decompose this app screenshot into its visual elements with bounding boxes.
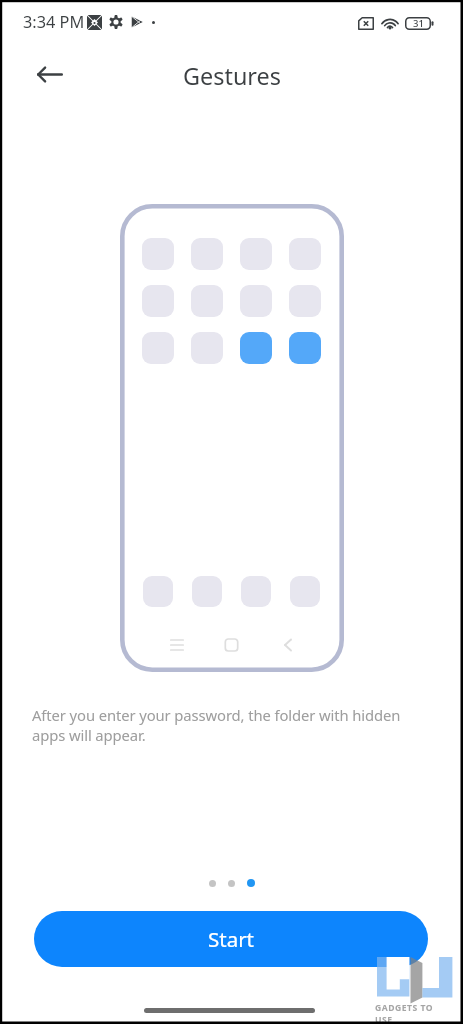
staticText: 31 <box>413 17 424 30</box>
staticText: 3:34 PM <box>23 11 85 33</box>
staticText: GADGETS TO USE <box>375 1002 451 1024</box>
staticText: After you enter your password, the folde… <box>32 705 432 746</box>
button[interactable]: Start <box>34 911 428 967</box>
staticText: Start <box>208 925 255 953</box>
button[interactable]: Back <box>32 56 68 92</box>
staticText: Gestures <box>183 60 281 92</box>
